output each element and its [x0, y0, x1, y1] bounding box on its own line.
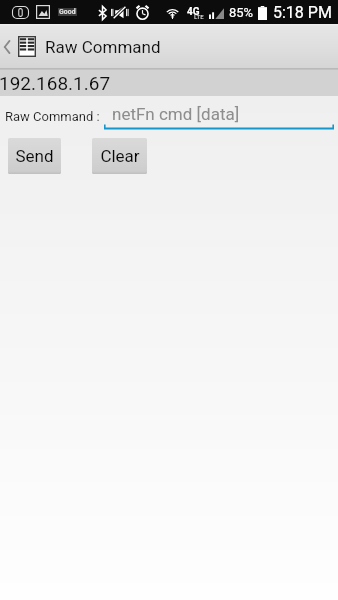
staticText: 5:18 PM	[273, 3, 332, 22]
staticText: Raw Command	[45, 37, 161, 57]
button[interactable]: Raw command input	[104, 122, 334, 130]
staticText: LTE	[194, 13, 204, 20]
staticText: 4G	[187, 6, 200, 18]
staticText: 85%	[229, 5, 254, 20]
button[interactable]: Send	[8, 138, 61, 174]
button[interactable]: Clear	[92, 138, 147, 174]
staticText: Clear	[100, 146, 140, 166]
staticText: Raw Command :	[5, 109, 100, 124]
staticText: 192.168.1.67	[0, 72, 111, 94]
staticText: Send	[15, 146, 54, 166]
button[interactable]: Navigate up	[0, 30, 37, 63]
staticText: netFn cmd [data]	[112, 104, 240, 124]
staticText: Good	[59, 8, 76, 16]
